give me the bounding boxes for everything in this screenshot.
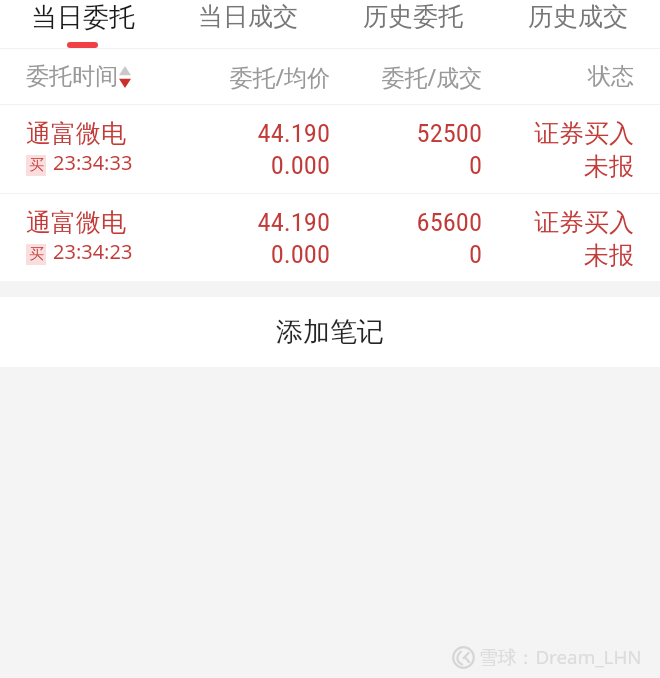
staticText: 通富微电: [26, 207, 126, 238]
button[interactable]: 当日委托: [0, 0, 165, 49]
staticText: 44.190: [178, 117, 330, 148]
staticText: 当日委托: [31, 1, 135, 34]
staticText: 未报: [482, 151, 634, 182]
button[interactable]: 通富微电: [0, 105, 660, 194]
staticText: 52500: [330, 117, 482, 148]
staticText: 0: [330, 149, 482, 180]
staticText: 历史成交: [528, 1, 628, 32]
button[interactable]: 添加笔记: [0, 297, 660, 367]
staticText: 雪球：Dream_LHN: [479, 644, 642, 670]
staticText: 23:34:33: [53, 149, 133, 176]
staticText: 证券买入: [482, 118, 634, 149]
staticText: 23:34:23: [53, 238, 133, 265]
button[interactable]: 当日成交: [165, 0, 330, 49]
staticText: 历史委托: [363, 1, 463, 32]
button[interactable]: 历史委托: [330, 0, 495, 49]
staticText: 65600: [330, 206, 482, 237]
staticText: 委托/均价: [178, 61, 330, 92]
staticText: 委托/成交: [330, 61, 482, 92]
button[interactable]: 委托时间: [26, 62, 178, 91]
staticText: 未报: [482, 240, 634, 271]
staticText: 当日成交: [198, 1, 298, 32]
staticText: 0.000: [178, 149, 330, 180]
staticText: 通富微电: [26, 118, 126, 149]
staticText: 委托时间: [26, 62, 118, 91]
staticText: 添加笔记: [276, 315, 384, 349]
staticText: 证券买入: [482, 207, 634, 238]
other: Xueqiu logo: [452, 646, 475, 669]
staticText: 状态: [482, 62, 634, 91]
staticText: 44.190: [178, 206, 330, 237]
button[interactable]: 通富微电: [0, 194, 660, 283]
button[interactable]: 历史成交: [495, 0, 660, 49]
staticText: 0: [330, 238, 482, 269]
staticText: 买: [29, 156, 44, 175]
staticText: 买: [29, 245, 44, 264]
staticText: 0.000: [178, 238, 330, 269]
other: Sort by order time: [119, 66, 131, 88]
